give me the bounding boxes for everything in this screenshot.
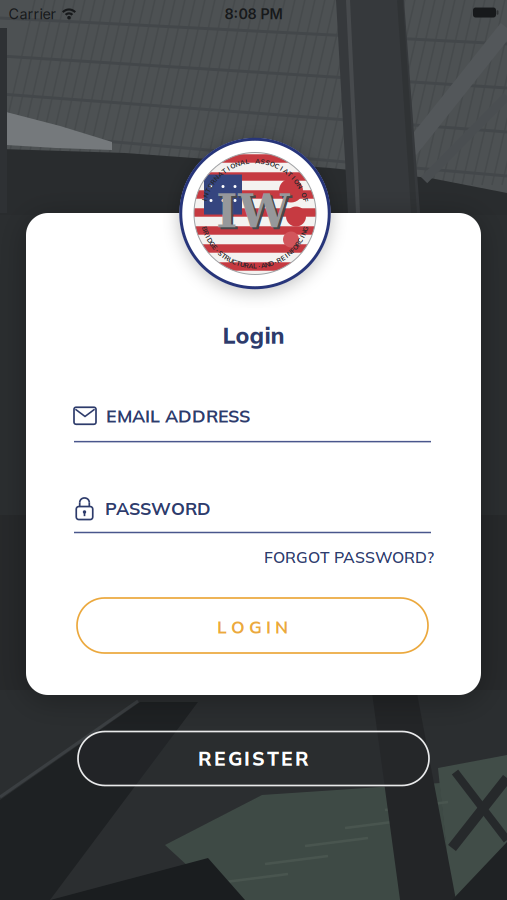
staticText: R	[225, 254, 230, 262]
staticText: T	[206, 186, 210, 195]
staticText	[301, 186, 303, 195]
staticText: T	[222, 167, 226, 175]
staticText: I	[301, 232, 303, 241]
staticText: N	[297, 182, 302, 190]
staticText: O	[230, 162, 235, 170]
staticText: L O G I N	[217, 616, 288, 638]
staticText: N	[287, 249, 292, 257]
staticText: N	[265, 260, 270, 269]
staticText: Carrier	[8, 5, 55, 23]
staticText: S	[261, 157, 265, 166]
staticText: E	[281, 254, 285, 262]
staticText: I	[292, 174, 294, 182]
button[interactable]: R E G I S T E R	[78, 731, 429, 785]
staticText: L	[245, 157, 249, 166]
staticText: R E G I S T E R	[198, 746, 309, 771]
staticText: I	[281, 164, 283, 172]
staticText: S	[218, 249, 222, 257]
staticText: R	[277, 256, 282, 264]
staticText: A	[240, 158, 245, 167]
staticText: 8:08 PM	[224, 5, 282, 23]
staticText: O	[293, 243, 298, 251]
staticText: R	[204, 229, 209, 237]
staticText: R	[211, 178, 216, 186]
staticText: I	[285, 251, 287, 260]
staticText: I	[207, 232, 209, 241]
staticText: ·	[216, 246, 218, 254]
staticText	[251, 157, 253, 165]
staticText: Login	[222, 321, 284, 349]
staticText: F	[290, 246, 294, 254]
staticText: FORGOT PASSWORD?	[264, 547, 434, 567]
staticText: A	[218, 170, 223, 178]
button[interactable]: FORGOT PASSWORD?	[74, 547, 434, 567]
staticText: S	[266, 158, 270, 167]
button[interactable]: EMAIL ADDRESS	[74, 405, 431, 442]
staticText: EMAIL ADDRESS	[106, 405, 250, 427]
staticText: A	[283, 167, 288, 175]
staticText: F	[304, 196, 308, 204]
staticText: U	[240, 260, 245, 269]
staticText: I	[227, 164, 229, 172]
staticText: T	[288, 170, 292, 178]
staticText: ·	[258, 262, 260, 270]
staticText: T	[222, 251, 226, 260]
staticText: C	[275, 162, 280, 170]
staticText: A	[255, 157, 260, 165]
staticText: D	[207, 236, 212, 244]
staticText: IW	[218, 186, 292, 240]
staticText: O	[294, 178, 299, 186]
staticText: C	[232, 258, 237, 266]
staticText: O	[270, 160, 275, 168]
staticText: N	[301, 229, 306, 237]
staticText: C	[298, 236, 303, 244]
staticText: A	[248, 262, 253, 270]
staticText: U	[228, 256, 233, 264]
staticText: I	[203, 196, 205, 204]
staticText: E	[213, 243, 217, 251]
staticText: G	[210, 240, 215, 248]
staticText: D	[269, 259, 274, 268]
staticText: R	[244, 261, 249, 270]
staticText: R	[295, 240, 300, 248]
staticText: G	[303, 225, 308, 233]
staticText: E	[208, 182, 212, 190]
staticText: A	[261, 261, 266, 270]
staticText: PASSWORD	[105, 497, 211, 519]
staticText: N	[214, 174, 219, 182]
staticText: B	[202, 225, 207, 233]
button[interactable]: L O G I N	[77, 598, 428, 653]
staticText: IW	[216, 184, 290, 238]
staticText: N	[235, 160, 240, 168]
staticText: L	[253, 262, 257, 270]
button[interactable]: PASSWORD	[74, 496, 431, 533]
staticText: O	[302, 191, 307, 199]
staticText: N	[203, 191, 208, 199]
staticText: T	[237, 259, 241, 268]
staticText: ·	[274, 258, 276, 266]
